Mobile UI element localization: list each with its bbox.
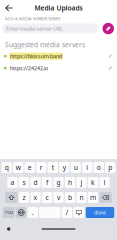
- staticText: v: [57, 193, 60, 202]
- button[interactable]: l: [99, 177, 110, 188]
- button[interactable]: ?123: [3, 207, 15, 218]
- button[interactable]: r: [36, 162, 46, 173]
- staticText: w: [16, 163, 21, 172]
- button[interactable]: Back: [2, 0, 16, 15]
- staticText: h: [68, 178, 72, 187]
- button[interactable]: d: [30, 177, 41, 188]
- button[interactable]: https://blossom.band: [0, 50, 117, 62]
- staticText: ADD A MEDIA MIRROR SERVER: [5, 16, 60, 21]
- staticText: r: [40, 163, 43, 172]
- button[interactable]: i: [82, 162, 92, 173]
- button[interactable]: https://24242.io: [0, 62, 117, 74]
- staticText: k: [91, 178, 95, 187]
- staticText: m: [90, 193, 96, 202]
- button[interactable]: c: [42, 192, 52, 203]
- button[interactable]: y: [59, 162, 69, 173]
- staticText: .: [32, 208, 34, 217]
- staticText: n: [79, 193, 83, 202]
- button[interactable]: v: [53, 192, 64, 203]
- button[interactable]: h: [65, 177, 75, 188]
- staticText: x: [33, 193, 37, 202]
- button[interactable]: o: [93, 162, 104, 173]
- button[interactable]: k: [88, 177, 98, 188]
- button[interactable]: s: [19, 177, 29, 188]
- staticText: t: [52, 163, 54, 172]
- button[interactable]: x: [30, 192, 41, 203]
- button[interactable]: Back: [4, 224, 13, 234]
- staticText: c: [45, 193, 48, 202]
- staticText: g: [56, 178, 60, 187]
- button[interactable]: Add media mirror server: [102, 23, 114, 34]
- staticText: https://blossom.band: [10, 53, 62, 60]
- button[interactable]: Delete: [99, 192, 112, 203]
- button[interactable]: Hide keyboard: [73, 207, 85, 218]
- staticText: i: [86, 163, 88, 172]
- button[interactable]: w: [13, 162, 23, 173]
- button[interactable]: f: [42, 177, 52, 188]
- button[interactable]: q: [1, 162, 12, 173]
- button[interactable]: m: [88, 192, 98, 203]
- staticText: done: [94, 209, 106, 216]
- staticText: u: [74, 163, 78, 172]
- staticText: l: [103, 178, 105, 187]
- staticText: Suggested media servers: [5, 40, 85, 49]
- button[interactable]: n: [76, 192, 87, 203]
- staticText: b: [68, 193, 72, 202]
- staticText: Enter media server URL: [6, 25, 63, 32]
- button[interactable]: .: [27, 207, 38, 218]
- button[interactable]: g: [53, 177, 64, 188]
- button[interactable]: j: [76, 177, 87, 188]
- staticText: a: [10, 178, 14, 187]
- button[interactable]: Emoji: [16, 207, 26, 218]
- staticText: y: [63, 163, 66, 172]
- staticText: Media Uploads: [34, 4, 82, 12]
- button[interactable]: /: [62, 207, 72, 218]
- staticText: q: [5, 163, 9, 172]
- staticText: p: [108, 163, 112, 172]
- staticText: ?123: [5, 210, 13, 215]
- staticText: s: [22, 178, 25, 187]
- staticText: e: [28, 163, 32, 172]
- staticText: https://24242.io: [10, 65, 48, 72]
- staticText: /: [66, 208, 68, 217]
- staticText: f: [46, 178, 48, 187]
- button[interactable]: Shift: [5, 192, 18, 203]
- button[interactable]: p: [105, 162, 115, 173]
- button[interactable]: t: [47, 162, 58, 173]
- button[interactable]: b: [65, 192, 75, 203]
- button[interactable]: z: [19, 192, 29, 203]
- staticText: o: [97, 163, 101, 172]
- button[interactable]: a: [7, 177, 18, 188]
- button[interactable]: e: [24, 162, 35, 173]
- staticText: d: [33, 178, 37, 187]
- button[interactable]: done: [86, 207, 114, 218]
- staticText: z: [22, 193, 25, 202]
- staticText: j: [80, 178, 82, 187]
- button[interactable]: u: [70, 162, 81, 173]
